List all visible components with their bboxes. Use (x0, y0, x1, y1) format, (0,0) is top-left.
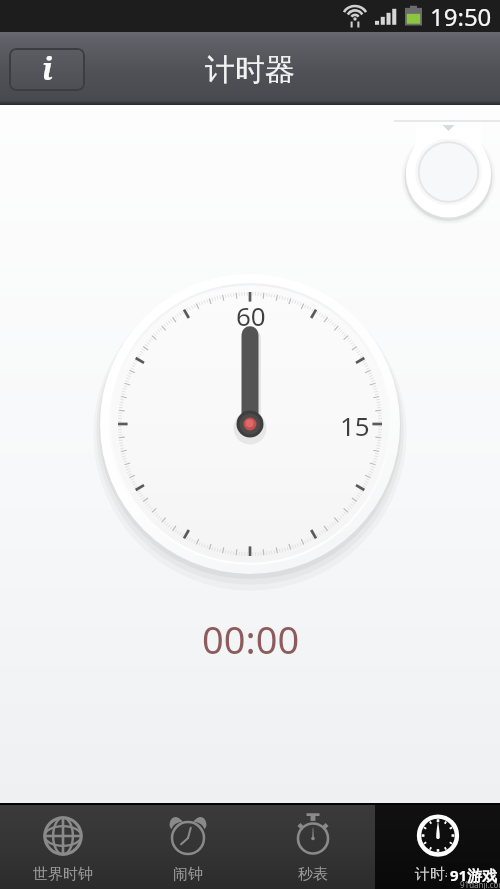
staticText: 00:00 (202, 613, 300, 665)
staticText: 闹钟 (173, 865, 203, 884)
button[interactable]: 世界时钟 (0, 803, 125, 889)
button[interactable]: Info (9, 48, 85, 91)
staticText: 60 (236, 298, 266, 333)
staticText: 世界时钟 (33, 865, 93, 884)
staticText: 计时器 (205, 51, 295, 89)
staticText: 15 (340, 408, 370, 443)
staticText: i (42, 48, 53, 89)
button[interactable]: 计时器 (375, 803, 500, 889)
staticText: 秒表 (298, 865, 328, 884)
staticText: 91danji.com (460, 879, 500, 889)
button[interactable]: 闹钟 (125, 803, 250, 889)
staticText: 91游戏 (450, 865, 498, 885)
staticText: 计时器 (415, 865, 460, 884)
button[interactable]: 秒表 (250, 803, 375, 889)
staticText: 19:50 (430, 0, 492, 32)
